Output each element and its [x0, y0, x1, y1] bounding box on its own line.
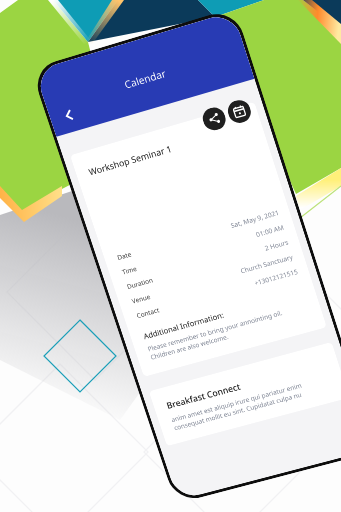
staticText: +13012121515	[253, 267, 299, 287]
button[interactable]: Back	[55, 101, 83, 129]
staticText: Calendar	[122, 66, 168, 92]
staticText: Additional Information:	[142, 309, 225, 341]
staticText: 01:00 AM	[255, 223, 285, 239]
staticText: Venue	[130, 292, 152, 305]
staticText: 2 Hours	[263, 237, 290, 252]
staticText: Church Sanctuary	[239, 252, 294, 275]
staticText: Sat, May 9, 2021	[229, 208, 280, 230]
staticText: Duration	[126, 275, 154, 291]
staticText: Time	[121, 264, 138, 276]
staticText: Date	[116, 249, 133, 262]
button[interactable]: Share	[200, 105, 229, 133]
staticText: Contact	[135, 305, 160, 320]
staticText: Breakfast Connect	[165, 380, 242, 411]
staticText: Please remember to bring your annointing…	[146, 308, 286, 361]
staticText: Workshop Seminar 1	[87, 142, 173, 178]
button[interactable]: Add to calendar	[225, 97, 254, 126]
staticText: anim amet est aliquip irure qui pariatur…	[170, 381, 306, 432]
